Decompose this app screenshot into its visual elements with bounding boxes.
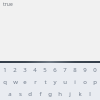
staticText: j [69, 90, 71, 98]
button[interactable]: d [25, 88, 35, 100]
button[interactable]: o [80, 76, 90, 88]
button[interactable]: q [0, 76, 10, 88]
button[interactable]: true [3, 1, 13, 8]
button[interactable]: j [65, 88, 75, 100]
staticText: e [23, 78, 27, 86]
staticText: f [39, 90, 42, 98]
staticText: s [19, 90, 22, 98]
button[interactable]: 2 [10, 64, 20, 76]
staticText: 2 [13, 66, 17, 74]
staticText: p [93, 78, 97, 86]
staticText: o [83, 78, 87, 86]
button[interactable]: 7 [60, 64, 70, 76]
staticText: l [89, 90, 91, 98]
staticText: t [44, 78, 47, 86]
staticText: k [78, 90, 82, 98]
button[interactable]: i [70, 76, 80, 88]
staticText: 9 [83, 66, 87, 74]
button[interactable]: h [55, 88, 65, 100]
button[interactable]: w [10, 76, 20, 88]
staticText: r [34, 78, 37, 86]
staticText: 1 [3, 66, 7, 74]
button[interactable]: k [75, 88, 85, 100]
button[interactable]: r [30, 76, 40, 88]
button[interactable]: u [60, 76, 70, 88]
staticText: i [74, 78, 76, 86]
staticText: y [53, 78, 57, 86]
button[interactable]: a [5, 88, 15, 100]
button[interactable]: t [40, 76, 50, 88]
staticText: h [58, 90, 62, 98]
button[interactable]: p [90, 76, 100, 88]
button[interactable]: 0 [90, 64, 100, 76]
staticText: true [3, 1, 13, 8]
staticText: 8 [73, 66, 77, 74]
button[interactable]: 9 [80, 64, 90, 76]
staticText: 5 [43, 66, 47, 74]
staticText: w [13, 78, 18, 86]
button[interactable]: e [20, 76, 30, 88]
button[interactable]: 8 [70, 64, 80, 76]
staticText: 6 [53, 66, 57, 74]
staticText: a [8, 90, 12, 98]
staticText: u [63, 78, 67, 86]
staticText: g [48, 90, 52, 98]
button[interactable]: g [45, 88, 55, 100]
button[interactable]: 5 [40, 64, 50, 76]
button[interactable]: l [85, 88, 95, 100]
staticText: 4 [33, 66, 37, 74]
button[interactable]: s [15, 88, 25, 100]
staticText: q [3, 78, 7, 86]
button[interactable]: 1 [0, 64, 10, 76]
button[interactable]: 6 [50, 64, 60, 76]
staticText: 7 [63, 66, 67, 74]
button[interactable]: f [35, 88, 45, 100]
button[interactable]: y [50, 76, 60, 88]
button[interactable]: 3 [20, 64, 30, 76]
staticText: 0 [93, 66, 97, 74]
button[interactable]: 4 [30, 64, 40, 76]
staticText: 3 [23, 66, 27, 74]
staticText: d [28, 90, 32, 98]
